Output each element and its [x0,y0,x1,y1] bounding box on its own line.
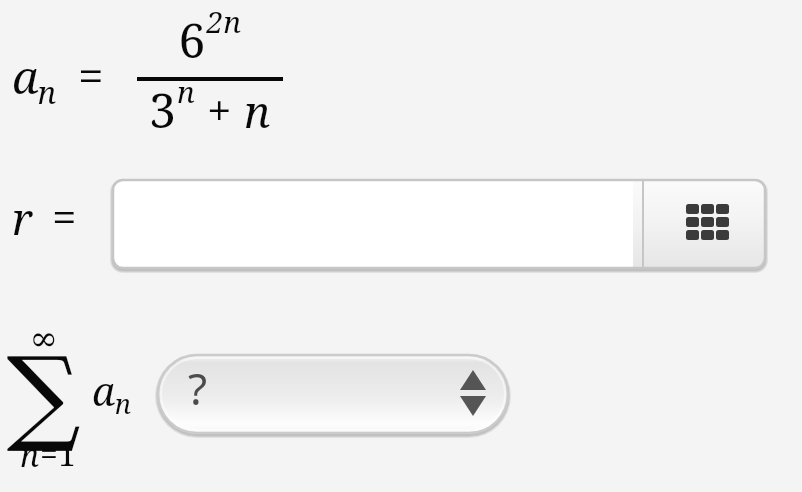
button[interactable]: Open math keypad [643,180,765,268]
button[interactable]: Radius of convergence input [113,180,643,268]
button[interactable]: Convergence selector dropdown [158,355,508,433]
